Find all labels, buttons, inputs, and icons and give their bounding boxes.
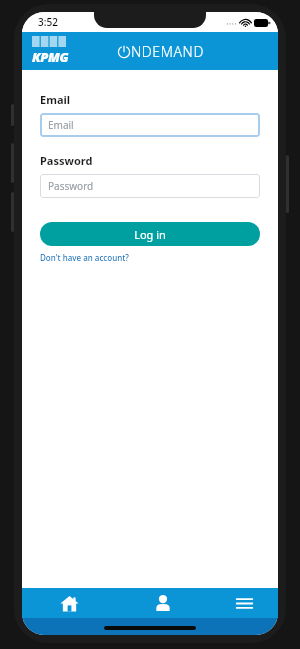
- staticText: 3:52: [38, 15, 58, 29]
- button[interactable]: Menu: [210, 588, 278, 618]
- staticText: Don't have an account?: [40, 252, 129, 263]
- button[interactable]: Log in: [40, 222, 260, 246]
- staticText: Email: [40, 92, 71, 107]
- button[interactable]: Don't have an account?: [40, 252, 129, 263]
- staticText: KPMG: [32, 48, 69, 66]
- staticText: Password: [40, 153, 93, 168]
- button[interactable]: Profile: [116, 588, 210, 618]
- staticText: Log in: [134, 227, 166, 242]
- button[interactable]: Home: [22, 588, 116, 618]
- staticText: NDEMAND: [131, 42, 204, 61]
- staticText: Email: [48, 118, 74, 132]
- staticText: Password: [48, 179, 94, 193]
- button[interactable]: Email: [40, 113, 260, 137]
- button[interactable]: Password: [40, 174, 260, 198]
